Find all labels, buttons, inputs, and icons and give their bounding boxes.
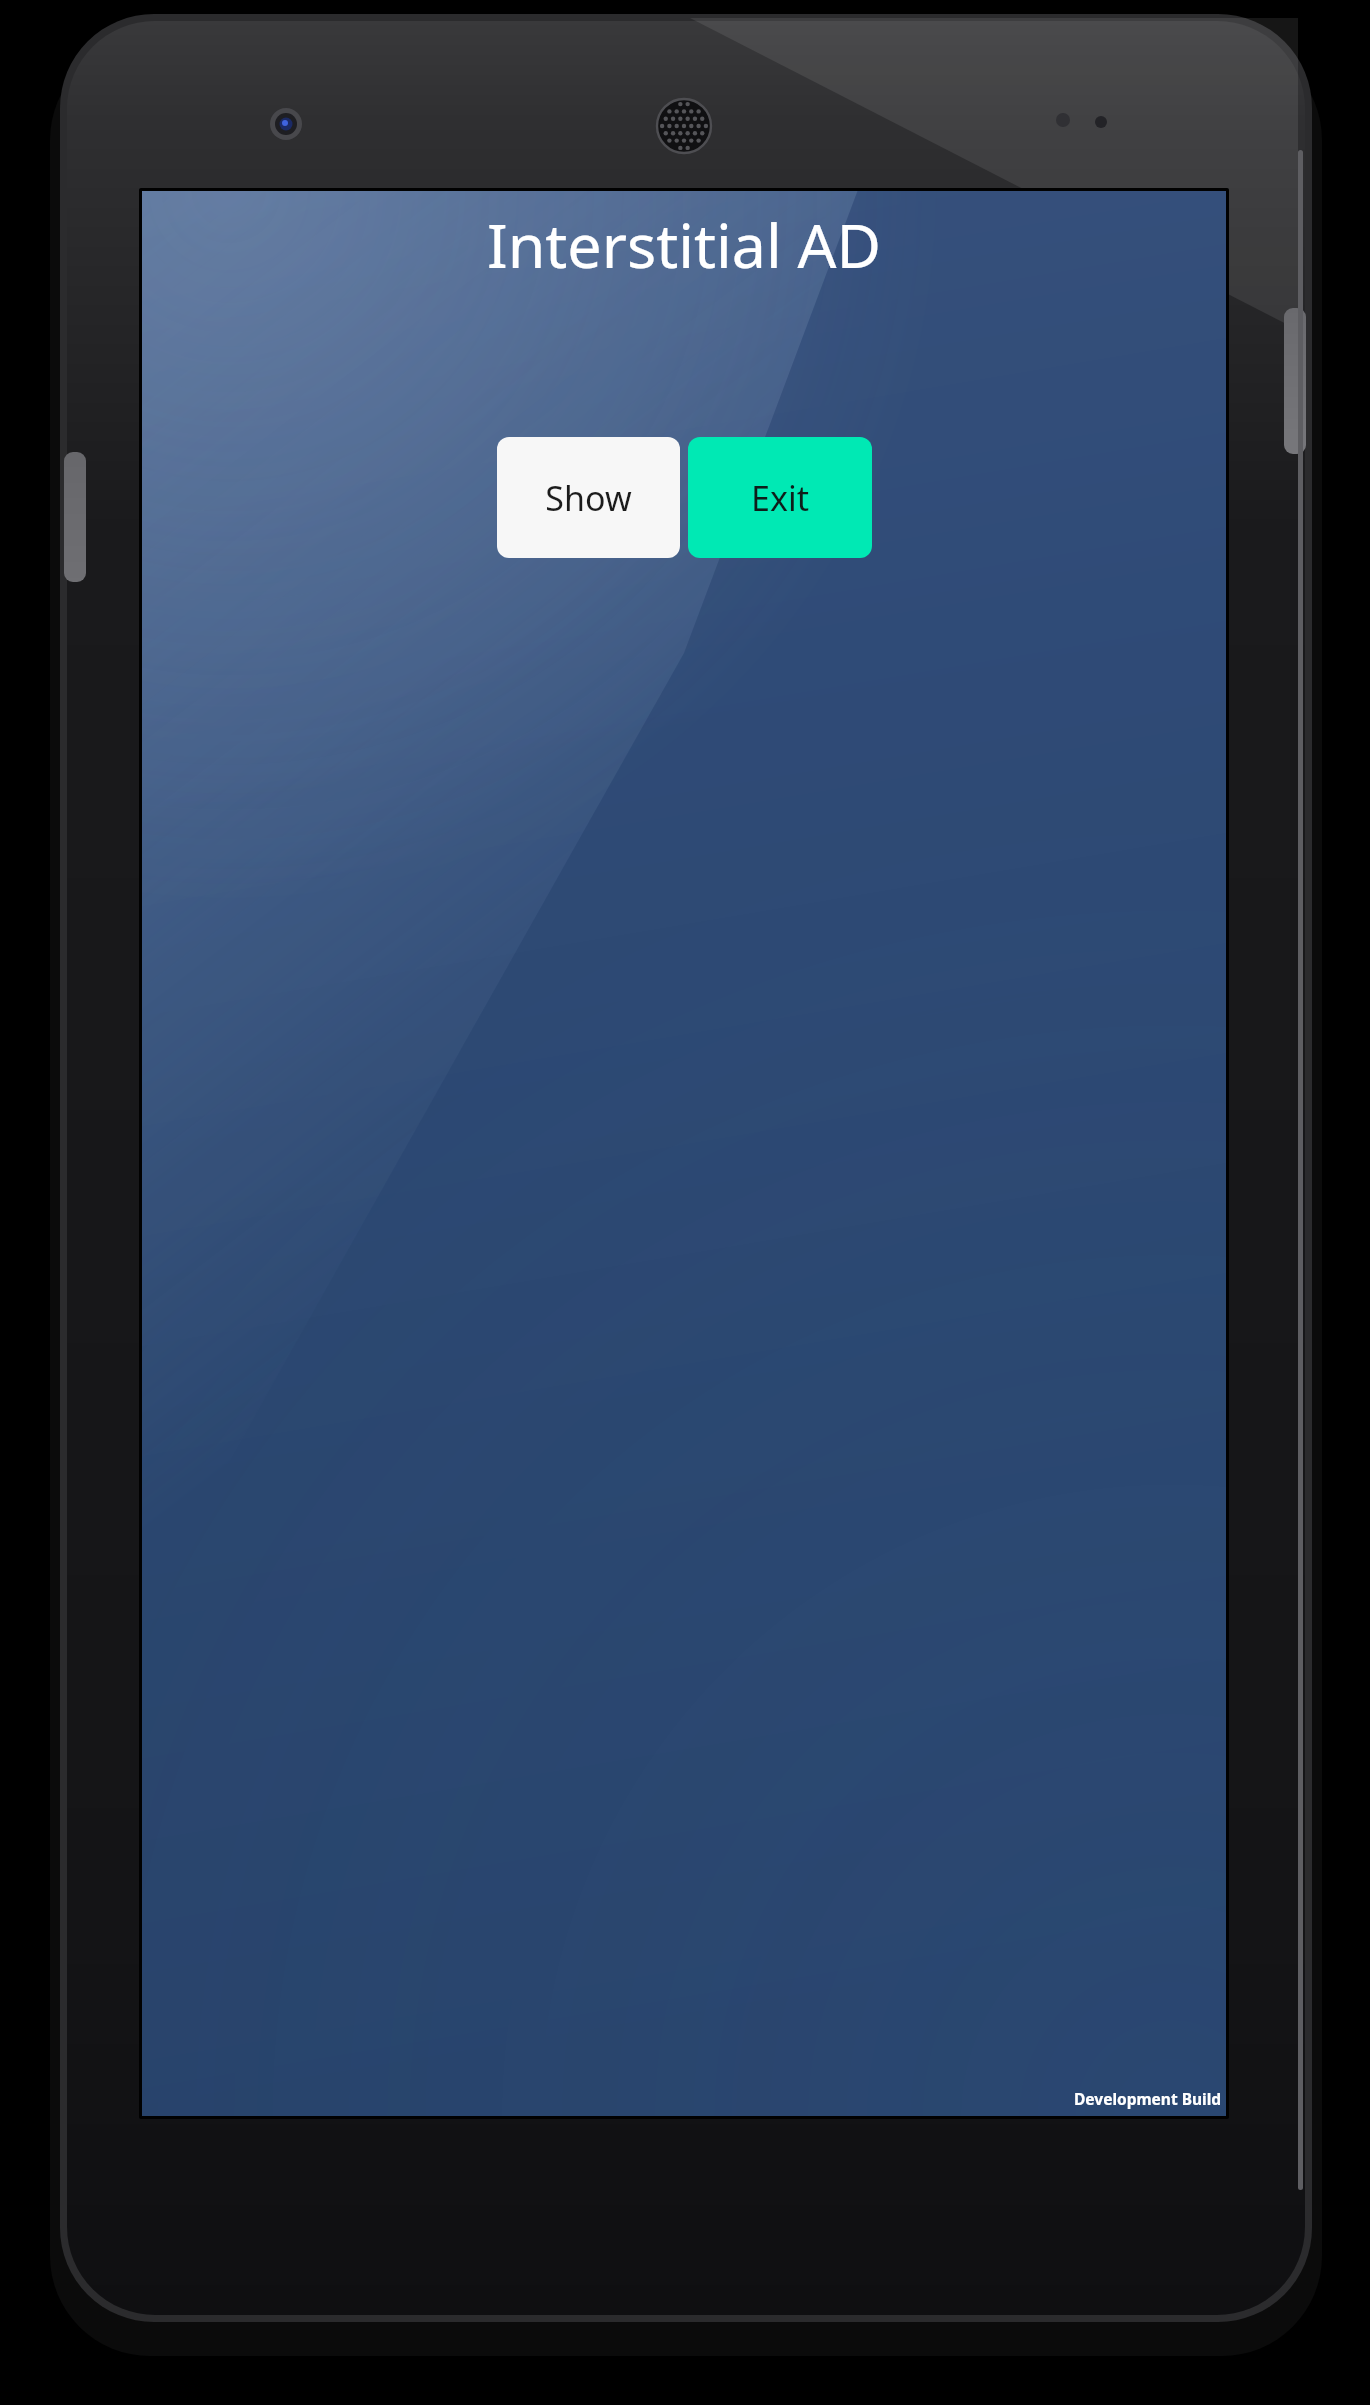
staticText: Development Build: [1074, 2088, 1222, 2109]
button[interactable]: Exit: [688, 437, 872, 558]
staticText: Interstitial AD: [142, 203, 1226, 286]
button[interactable]: Show: [497, 437, 680, 558]
staticText: Show: [545, 475, 632, 521]
staticText: Exit: [751, 475, 809, 521]
